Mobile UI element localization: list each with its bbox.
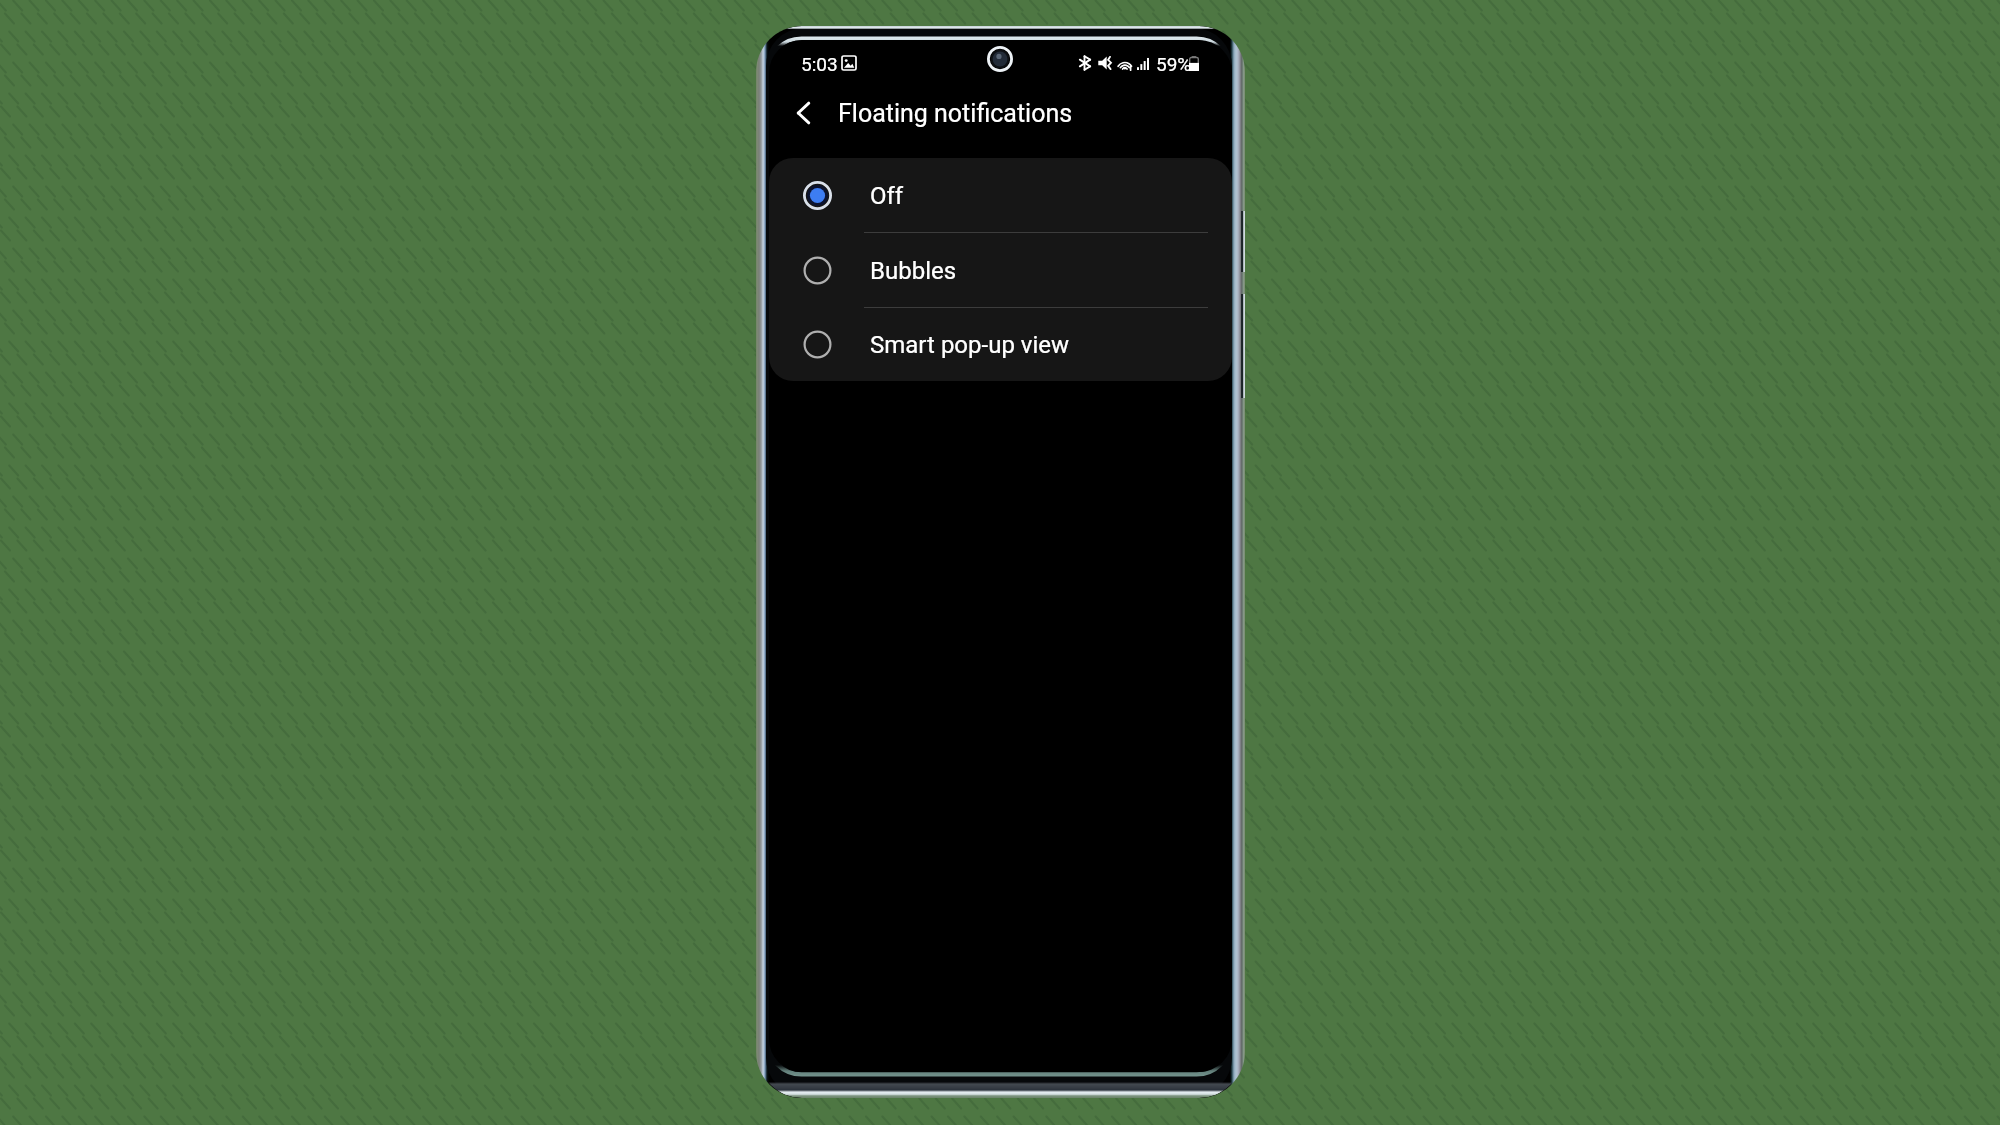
button[interactable]: Back <box>787 96 821 130</box>
button[interactable]: Off <box>769 158 1232 233</box>
staticText: Off <box>870 182 904 210</box>
staticText: 5:03 <box>801 53 838 75</box>
staticText: Bubbles <box>870 257 957 285</box>
button[interactable]: Bubbles <box>769 233 1232 308</box>
button[interactable]: Smart pop-up view <box>769 308 1232 381</box>
staticText: Floating notifications <box>838 99 1073 128</box>
staticText: 59% <box>1156 53 1192 75</box>
staticText: Smart pop-up view <box>870 331 1070 359</box>
